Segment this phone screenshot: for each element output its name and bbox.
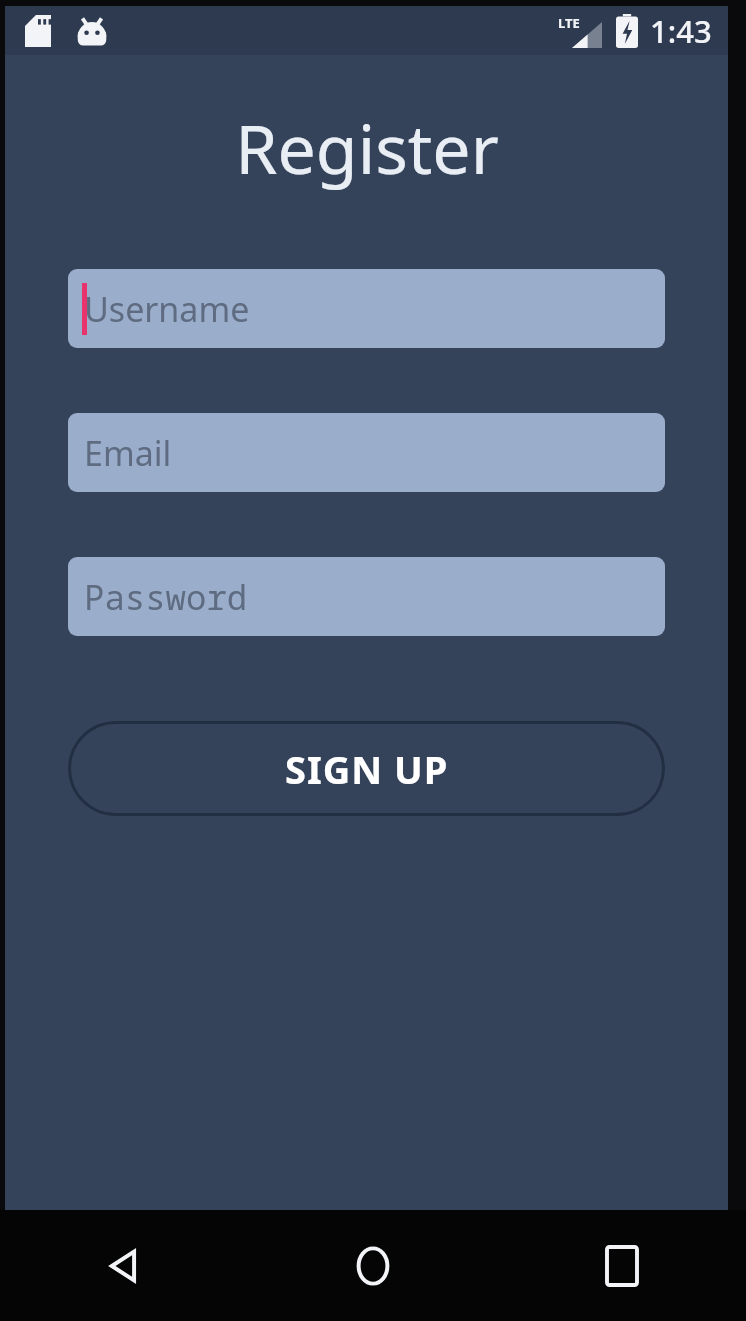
button[interactable]: Username [68,269,665,348]
button[interactable]: SIGN UP [68,721,665,816]
staticText: Email [84,430,172,476]
staticText: SIGN UP [285,743,449,795]
button[interactable]: Email [68,413,665,492]
staticText: Password [84,574,248,620]
button[interactable]: Recent apps [497,1210,746,1321]
staticText: Register [235,101,499,194]
staticText: Username [84,286,250,332]
button[interactable]: Back [0,1210,248,1321]
button[interactable]: Home [248,1210,497,1321]
staticText: LTE [558,14,580,32]
staticText: 1:43 [650,10,712,52]
button[interactable]: Password [68,557,665,636]
